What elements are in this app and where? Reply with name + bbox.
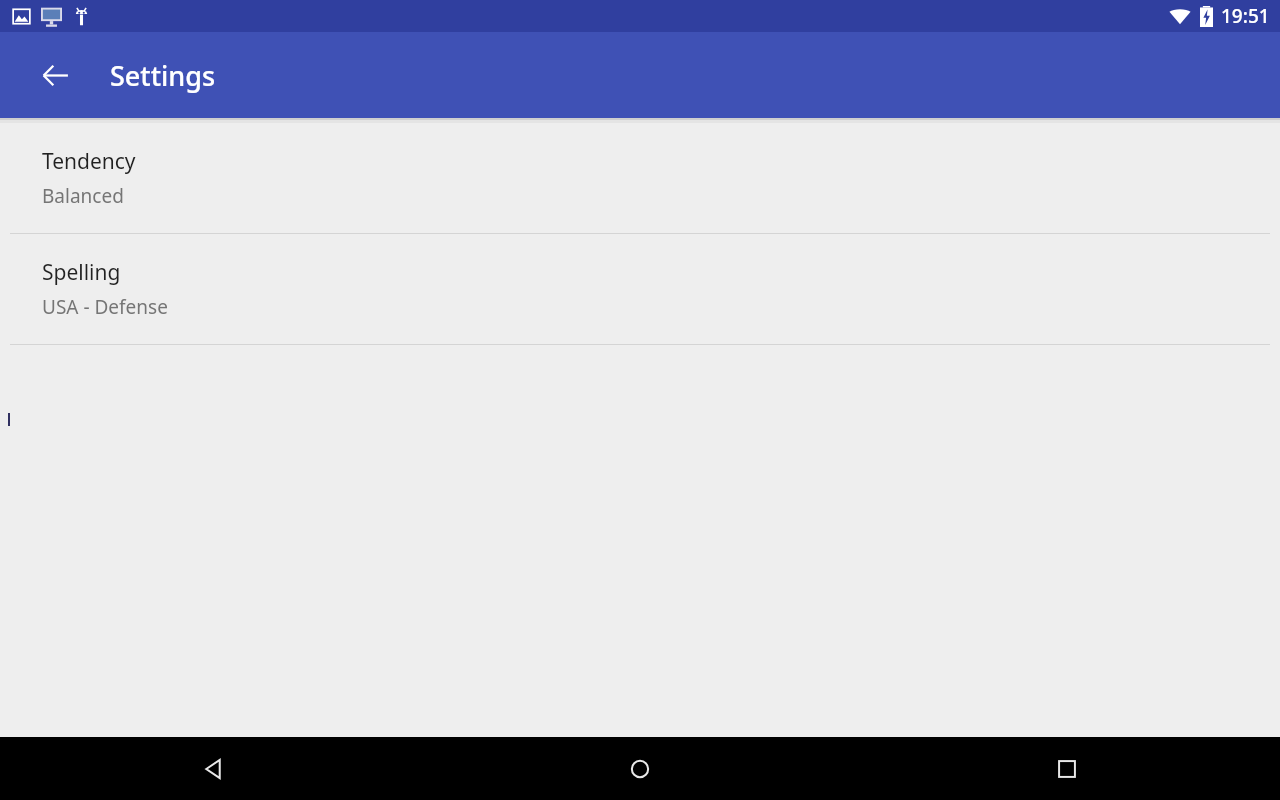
- staticText: Balanced: [42, 183, 124, 209]
- staticText: Tendency: [42, 147, 136, 176]
- button[interactable]: Recent apps: [853, 737, 1280, 800]
- button[interactable]: Back: [0, 737, 426, 800]
- button[interactable]: Tendency: [0, 123, 1280, 233]
- button[interactable]: Back: [31, 51, 79, 99]
- staticText: Settings: [110, 57, 216, 94]
- button[interactable]: Home: [426, 737, 853, 800]
- staticText: Spelling: [42, 258, 121, 287]
- button[interactable]: Spelling: [0, 234, 1280, 344]
- staticText: USA - Defense: [42, 294, 168, 320]
- staticText: 19:51: [1221, 3, 1270, 29]
